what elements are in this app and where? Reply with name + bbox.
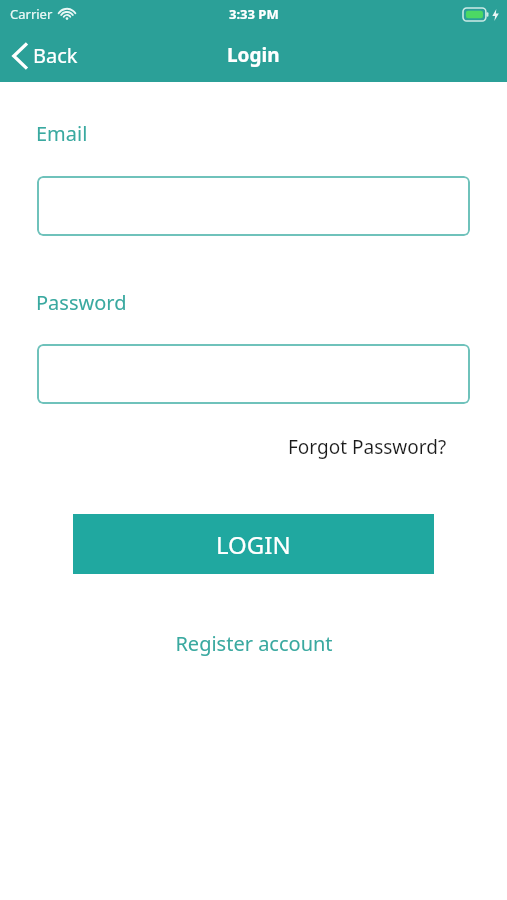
staticText: Carrier [10, 5, 53, 23]
staticText: Forgot Password? [288, 434, 447, 460]
button[interactable]: Back [0, 36, 92, 75]
staticText: Register account [175, 630, 333, 657]
button[interactable] [37, 176, 470, 236]
button[interactable]: LOGIN [73, 514, 434, 574]
staticText: Login [227, 42, 280, 68]
other: Back [12, 43, 27, 69]
staticText: 3:33 PM [229, 5, 279, 23]
button[interactable]: Forgot Password? [282, 430, 453, 464]
staticText: Password [36, 289, 127, 316]
other: Battery charging [463, 8, 489, 21]
other: Wi-Fi signal [59, 8, 75, 20]
button[interactable] [37, 344, 470, 404]
staticText: Email [36, 120, 88, 147]
staticText: LOGIN [216, 528, 291, 561]
staticText: Back [33, 42, 78, 69]
button[interactable]: Register account [165, 625, 343, 662]
